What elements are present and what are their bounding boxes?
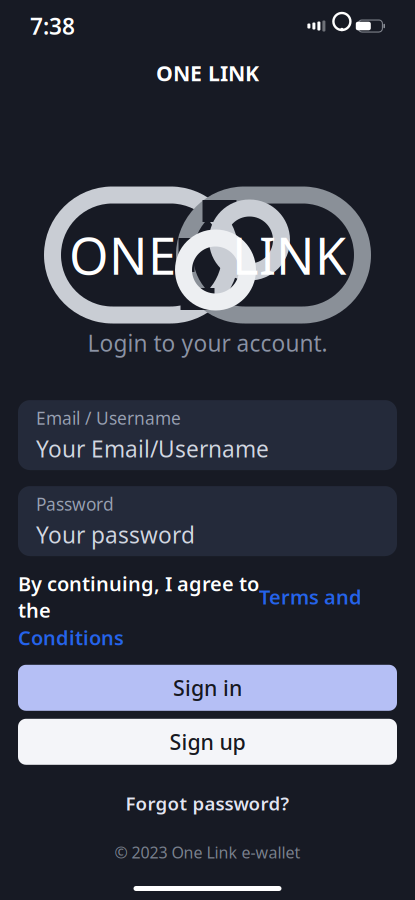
button[interactable]: Sign up: [18, 719, 397, 765]
staticText: LINK: [232, 221, 346, 289]
staticText: By continuing, I agree to the: [18, 570, 259, 623]
staticText: 7:38: [30, 11, 75, 41]
staticText: Your password: [36, 520, 195, 550]
staticText: Forgot password?: [125, 791, 289, 816]
staticText: Login to your account.: [87, 328, 327, 358]
staticText: Email / Username: [36, 406, 181, 429]
staticText: Sign in: [173, 674, 242, 702]
staticText: Terms and: [259, 583, 362, 610]
button[interactable]: Password: [18, 486, 397, 556]
button[interactable]: Email / Username: [18, 400, 397, 470]
staticText: ONE: [69, 221, 176, 289]
staticText: © 2023 One Link e-wallet: [114, 842, 300, 863]
button[interactable]: Sign in: [18, 665, 397, 711]
button[interactable]: Forgot password?: [111, 785, 303, 822]
staticText: Your Email/Username: [36, 434, 269, 464]
button[interactable]: Conditions: [18, 624, 124, 651]
staticText: Sign up: [169, 728, 245, 756]
button[interactable]: Terms and: [259, 583, 362, 610]
staticText: Conditions: [18, 624, 124, 651]
staticText: Password: [36, 492, 114, 515]
staticText: ONE LINK: [156, 59, 259, 87]
